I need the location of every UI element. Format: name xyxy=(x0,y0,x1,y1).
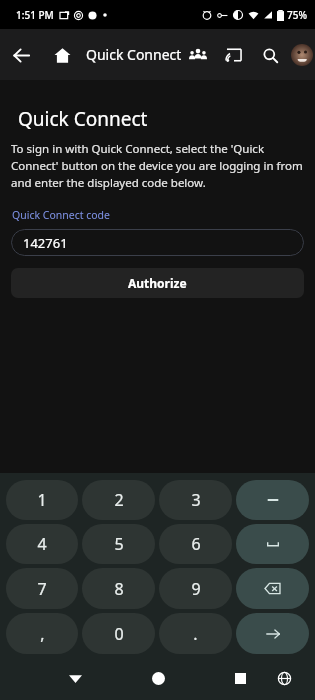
button[interactable]: , xyxy=(6,613,78,654)
button[interactable]: Home xyxy=(46,39,78,71)
staticText: 6 xyxy=(191,533,201,555)
button[interactable]: Backspace xyxy=(236,568,309,609)
button[interactable]: Home xyxy=(145,665,171,691)
button[interactable]: 3 xyxy=(159,480,232,520)
staticText: Quick Connect xyxy=(86,45,182,64)
button[interactable]: Minus xyxy=(236,480,309,520)
button[interactable]: Enter xyxy=(236,613,309,654)
staticText: 4 xyxy=(37,533,47,555)
staticText: 7 xyxy=(37,578,47,600)
button[interactable]: 7 xyxy=(6,568,78,609)
button[interactable]: . xyxy=(159,613,232,654)
staticText: . xyxy=(193,623,198,645)
button[interactable]: 5 xyxy=(82,524,155,564)
button[interactable]: Account xyxy=(289,39,315,71)
button[interactable]: Recents xyxy=(227,665,253,691)
button[interactable]: Change language xyxy=(271,665,297,691)
button[interactable]: 1 xyxy=(6,480,78,520)
staticText: 1:51 PM xyxy=(16,8,54,22)
button[interactable]: Search xyxy=(254,39,286,71)
staticText: 9 xyxy=(191,578,201,600)
staticText: , xyxy=(40,623,45,645)
button[interactable]: Authorize xyxy=(11,268,304,298)
button[interactable]: People xyxy=(182,39,214,71)
staticText: 8 xyxy=(114,578,124,600)
button[interactable]: 8 xyxy=(82,568,155,609)
button[interactable]: 9 xyxy=(159,568,232,609)
button[interactable]: Back xyxy=(6,37,36,73)
staticText: 3 xyxy=(191,489,201,511)
staticText: 142761 xyxy=(23,234,68,252)
button[interactable]: 0 xyxy=(82,613,155,654)
button[interactable]: 142761 xyxy=(11,229,304,256)
button[interactable]: 4 xyxy=(6,524,78,564)
staticText: Quick Connect xyxy=(18,106,148,132)
staticText: Quick Connect code xyxy=(12,208,110,222)
button[interactable]: 2 xyxy=(82,480,155,520)
staticText: Authorize xyxy=(128,275,187,291)
staticText: 1 xyxy=(37,489,47,511)
button[interactable]: 6 xyxy=(159,524,232,564)
staticText: To sign in with Quick Connect, select th… xyxy=(11,141,304,191)
button[interactable]: Space xyxy=(236,524,309,564)
staticText: 0 xyxy=(114,623,124,645)
button[interactable]: Cast xyxy=(218,39,250,71)
staticText: 5 xyxy=(114,533,124,555)
staticText: 2 xyxy=(114,489,124,511)
button[interactable]: Hide keyboard xyxy=(62,665,88,691)
staticText: 75% xyxy=(287,8,307,22)
